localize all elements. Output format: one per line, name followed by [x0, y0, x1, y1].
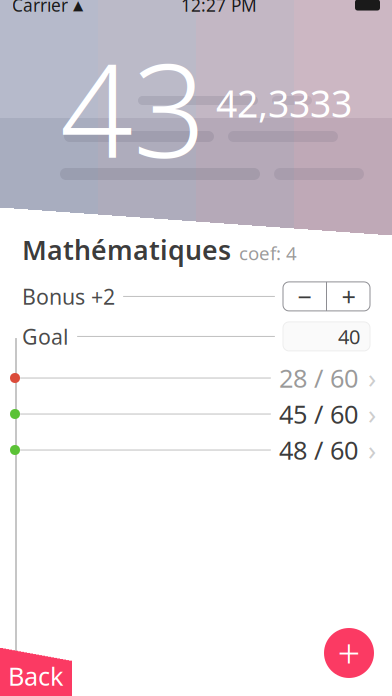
staticText: 43: [60, 23, 206, 193]
staticText: 45 / 60: [279, 397, 358, 431]
button[interactable]: Add grade: [324, 628, 374, 678]
button[interactable]: Back: [0, 648, 72, 696]
button[interactable]: 45 / 60: [0, 396, 392, 432]
staticText: ›: [368, 360, 376, 396]
staticText: Bonus +2: [22, 282, 115, 310]
staticText: ›: [368, 432, 376, 468]
staticText: 28 / 60: [279, 361, 358, 395]
button[interactable]: 48 / 60: [0, 432, 392, 468]
button[interactable]: Increase bonus: [327, 282, 370, 311]
staticText: Mathématiques: [22, 232, 231, 267]
staticText: Goal: [22, 322, 69, 350]
button[interactable]: Decrease bonus: [283, 282, 326, 311]
staticText: ▲: [73, 0, 83, 12]
staticText: Carrier: [12, 0, 68, 16]
staticText: coef: 4: [239, 241, 297, 265]
staticText: +: [337, 626, 360, 679]
staticText: −: [297, 280, 311, 313]
staticText: ›: [368, 396, 376, 432]
staticText: 40: [338, 323, 360, 350]
staticText: 42,3333: [216, 78, 352, 128]
staticText: +: [341, 280, 355, 313]
staticText: 12:27 PM: [181, 0, 257, 16]
staticText: Back: [8, 659, 64, 693]
staticText: 48 / 60: [279, 433, 358, 467]
button[interactable]: 28 / 60: [0, 360, 392, 396]
button[interactable]: 40: [283, 322, 370, 351]
